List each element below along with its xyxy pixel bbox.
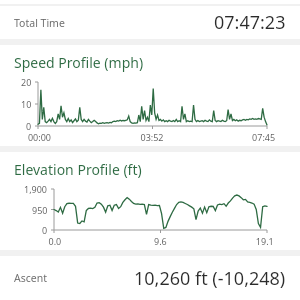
button[interactable]: Ascent [0,256,300,300]
staticText: Ascent [14,271,47,285]
staticText: 10,260 ft (-10,248) [134,266,286,291]
staticText: Elevation Profile (ft) [14,160,142,179]
staticText: Total Time [14,16,65,30]
button[interactable]: Elevation Profile (ft) [0,152,300,250]
button[interactable]: Total Time [0,6,300,39]
staticText: Speed Profile (mph) [14,53,144,72]
button[interactable]: Speed Profile (mph) [0,45,300,146]
staticText: 07:47:23 [214,10,286,35]
